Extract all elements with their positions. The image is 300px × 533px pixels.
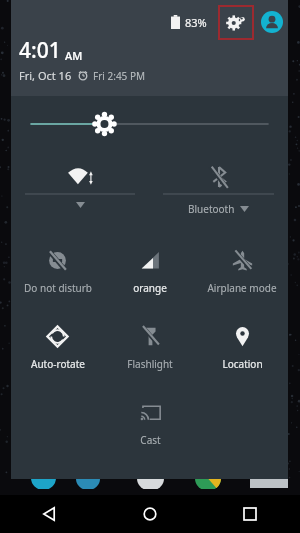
staticText: Auto-rotate [31, 357, 85, 371]
button[interactable] [25, 162, 135, 218]
button[interactable]: User profile [261, 11, 283, 33]
staticText: Airplane mode [207, 281, 277, 295]
staticText: orange [133, 281, 167, 295]
staticText: Flashlight [127, 357, 173, 371]
button[interactable]: orange [104, 236, 196, 312]
button[interactable]: Settings [218, 5, 254, 40]
button[interactable]: Do not disturb [11, 236, 104, 312]
button[interactable]: Airplane mode [196, 236, 288, 312]
button[interactable]: Auto-rotate [11, 312, 104, 388]
staticText: 83% [185, 15, 207, 30]
button[interactable]: Home [100, 495, 200, 533]
staticText: Do not disturb [24, 281, 92, 295]
staticText: Cast [140, 433, 161, 447]
button[interactable]: Cast [104, 388, 196, 464]
staticText: Bluetooth [188, 202, 235, 216]
button[interactable]: Bluetooth [163, 162, 274, 218]
staticText: 4:01 [19, 36, 61, 65]
staticText: Fri 2:45 PM [93, 69, 146, 83]
staticText: Fri, Oct 16 [19, 68, 72, 83]
button[interactable]: Location [196, 312, 288, 388]
button[interactable]: Flashlight [104, 312, 196, 388]
staticText: Location [222, 357, 263, 371]
button[interactable]: Back [0, 495, 100, 533]
button[interactable] [11, 102, 288, 146]
staticText: AM [65, 48, 83, 63]
button[interactable]: Recent apps [200, 495, 300, 533]
